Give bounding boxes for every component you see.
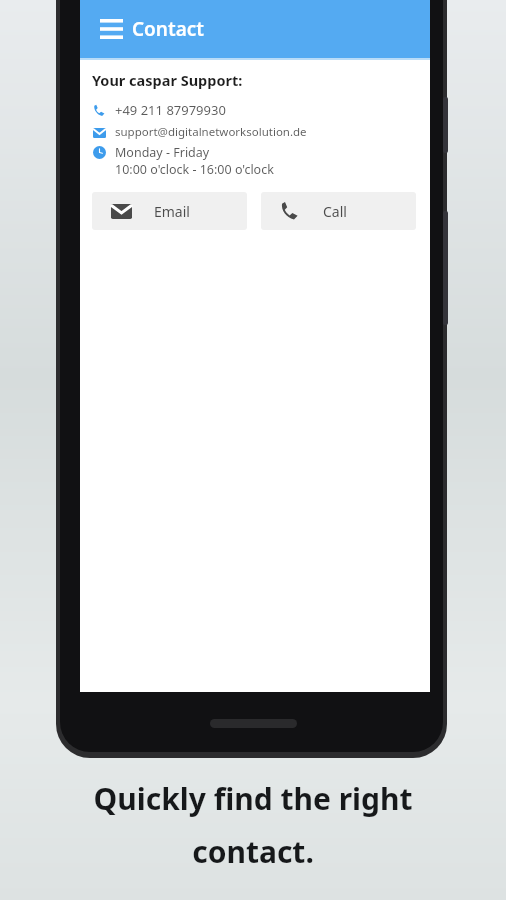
staticText: Monday - Friday [115,144,210,161]
staticText: contact. [192,831,314,872]
staticText: Email [154,202,190,221]
staticText: Contact [132,16,205,42]
staticText: +49 211 87979930 [115,101,226,119]
staticText: support@digitalnetworksolution.de [115,124,307,140]
button[interactable]: Email [92,192,247,230]
button[interactable]: Call [261,192,416,230]
staticText: 10:00 o'clock - 16:00 o'clock [115,161,274,178]
staticText: Quickly find the right [93,778,413,819]
staticText: Your caspar Support: [92,70,243,90]
button[interactable]: Open navigation menu [91,9,131,49]
staticText: Call [323,202,347,221]
